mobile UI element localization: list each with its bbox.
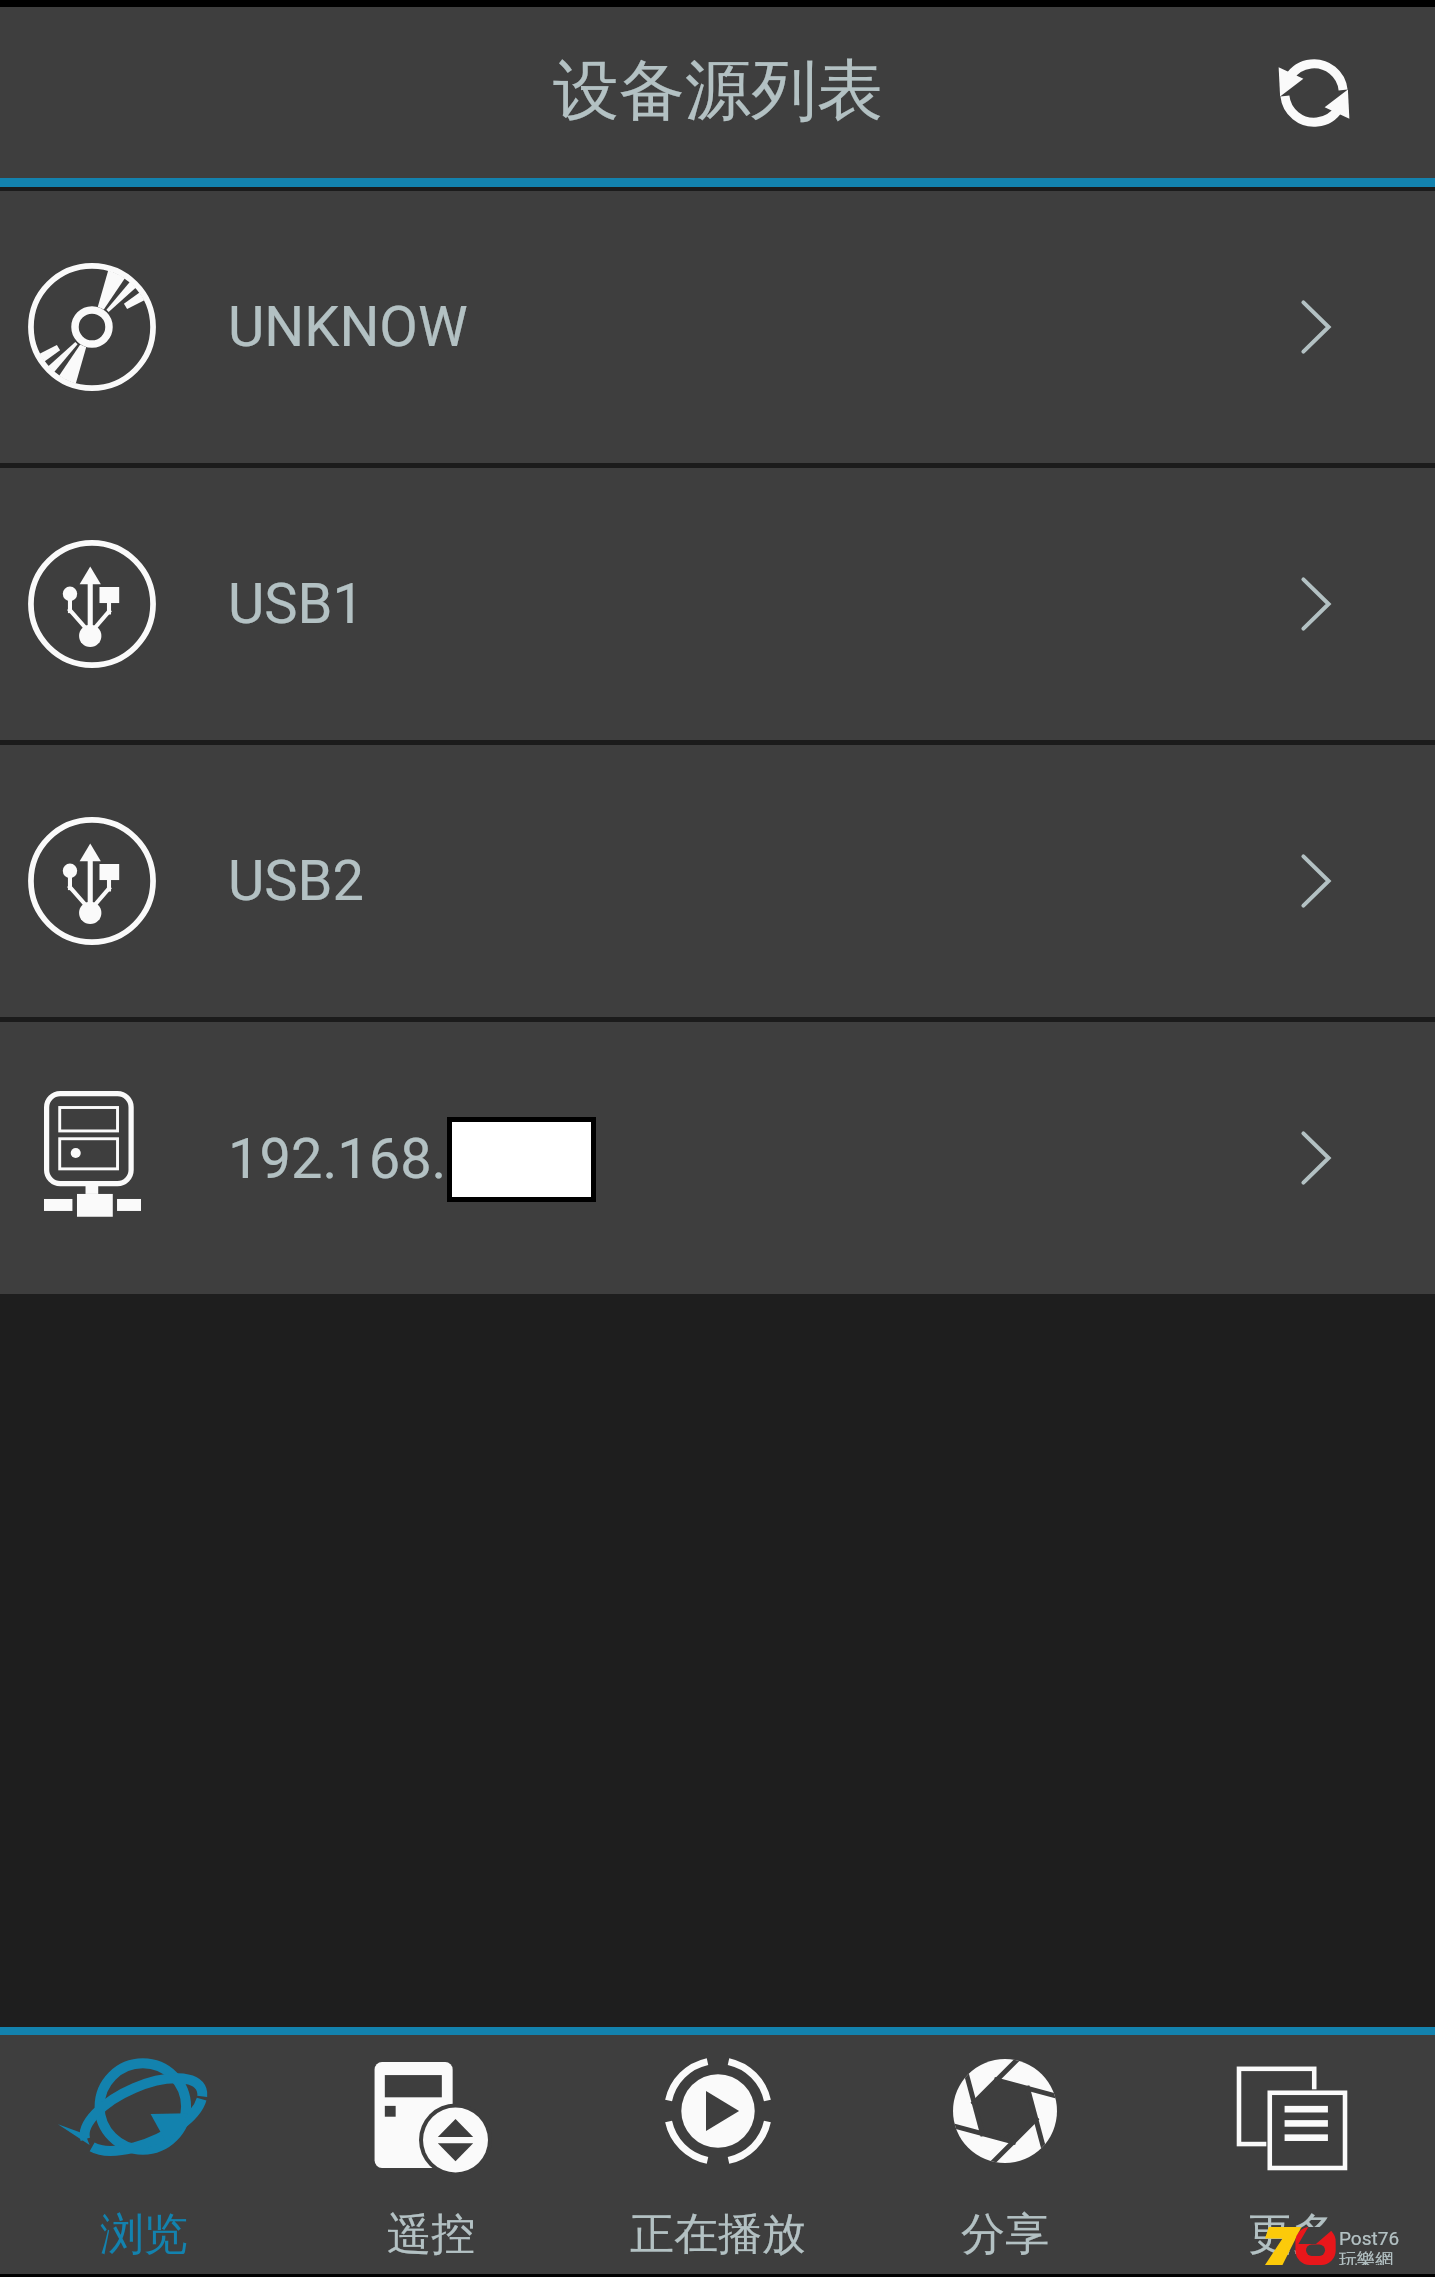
button[interactable]: 更多 <box>1148 2035 1435 2274</box>
staticText: 玩樂網 <box>1339 2249 1393 2265</box>
button[interactable]: USB1 <box>0 468 1435 740</box>
staticText: 正在播放 <box>630 2207 806 2262</box>
button[interactable]: 遥控 <box>287 2035 574 2274</box>
button[interactable]: 正在播放 <box>574 2035 861 2274</box>
staticText: 遥控 <box>387 2207 475 2262</box>
button[interactable]: 192.168. <box>0 1022 1435 1294</box>
staticText: UNKNOW <box>228 294 468 360</box>
button[interactable]: UNKNOW <box>0 191 1435 463</box>
staticText: 192.168. <box>228 1126 447 1192</box>
staticText: USB1 <box>228 571 364 637</box>
button[interactable]: USB2 <box>0 745 1435 1017</box>
button[interactable]: Refresh <box>1259 38 1369 148</box>
staticText: 更多 <box>1248 2207 1336 2262</box>
staticText: Post76 <box>1339 2227 1400 2249</box>
button[interactable]: 浏览 <box>0 2035 287 2274</box>
staticText: 分享 <box>961 2207 1049 2262</box>
staticText: 浏览 <box>100 2207 188 2262</box>
staticText: 设备源列表 <box>553 49 883 132</box>
staticText: USB2 <box>228 848 364 914</box>
button[interactable]: 分享 <box>861 2035 1148 2274</box>
